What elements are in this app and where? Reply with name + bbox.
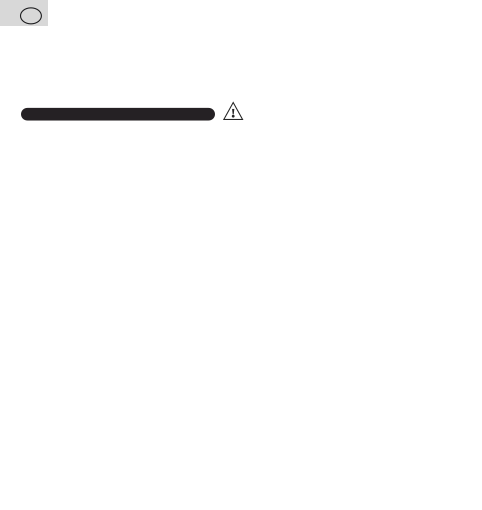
button[interactable]: Progress xyxy=(21,108,215,120)
button[interactable]: Warning xyxy=(223,102,243,120)
button[interactable]: Menu xyxy=(0,0,48,26)
